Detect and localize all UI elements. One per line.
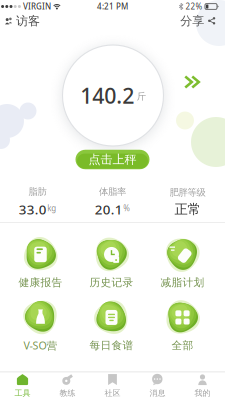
staticText: 减脂计划	[160, 276, 204, 289]
staticText: 点击上秤	[88, 152, 136, 167]
staticText: %	[123, 203, 130, 213]
staticText: 140.2	[80, 81, 134, 110]
button[interactable]: 消息	[135, 372, 180, 400]
button[interactable]: 每日食谱	[76, 299, 147, 353]
staticText: 正常	[174, 201, 200, 217]
staticText: 33.0	[19, 200, 47, 218]
staticText: 全部	[171, 339, 193, 352]
staticText: 我的	[194, 388, 210, 398]
button[interactable]: 教练	[45, 372, 90, 400]
staticText: 历史记录	[89, 276, 133, 289]
button[interactable]: 点击上秤	[75, 150, 149, 169]
staticText: 斤	[137, 91, 146, 102]
button[interactable]: 访客	[4, 14, 40, 28]
staticText: 脂肪	[28, 186, 46, 197]
staticText: 分享	[180, 14, 204, 28]
staticText: 访客	[16, 14, 40, 28]
staticText: 工具	[14, 388, 30, 398]
staticText: 每日食谱	[89, 339, 133, 352]
staticText: 教练	[59, 388, 75, 398]
button[interactable]: 查看更多	[183, 75, 200, 88]
button[interactable]: 社区	[90, 372, 135, 400]
staticText: kg	[47, 203, 56, 213]
staticText: 20.1	[95, 200, 123, 218]
button[interactable]: V-SO营	[5, 299, 76, 353]
staticText: 消息	[149, 388, 165, 398]
staticText: V-SO营	[23, 338, 57, 353]
button[interactable]: 健康报告	[5, 236, 76, 290]
button[interactable]: 历史记录	[76, 236, 147, 290]
staticText: 4:21 PM	[97, 1, 128, 12]
staticText: 22%	[185, 1, 202, 12]
button[interactable]: 分享	[180, 14, 216, 28]
staticText: 健康报告	[18, 276, 62, 289]
button[interactable]: 全部	[147, 299, 218, 353]
button[interactable]: 我的	[180, 372, 225, 400]
button[interactable]: 当前体重 140.2 斤	[62, 45, 163, 146]
staticText: VIRGIN	[23, 1, 51, 12]
button[interactable]: 减脂计划	[147, 236, 218, 290]
staticText: 体脂率	[99, 186, 126, 197]
staticText: 社区	[104, 388, 120, 398]
button[interactable]: 工具	[0, 372, 45, 400]
staticText: 肥胖等级	[169, 187, 205, 198]
